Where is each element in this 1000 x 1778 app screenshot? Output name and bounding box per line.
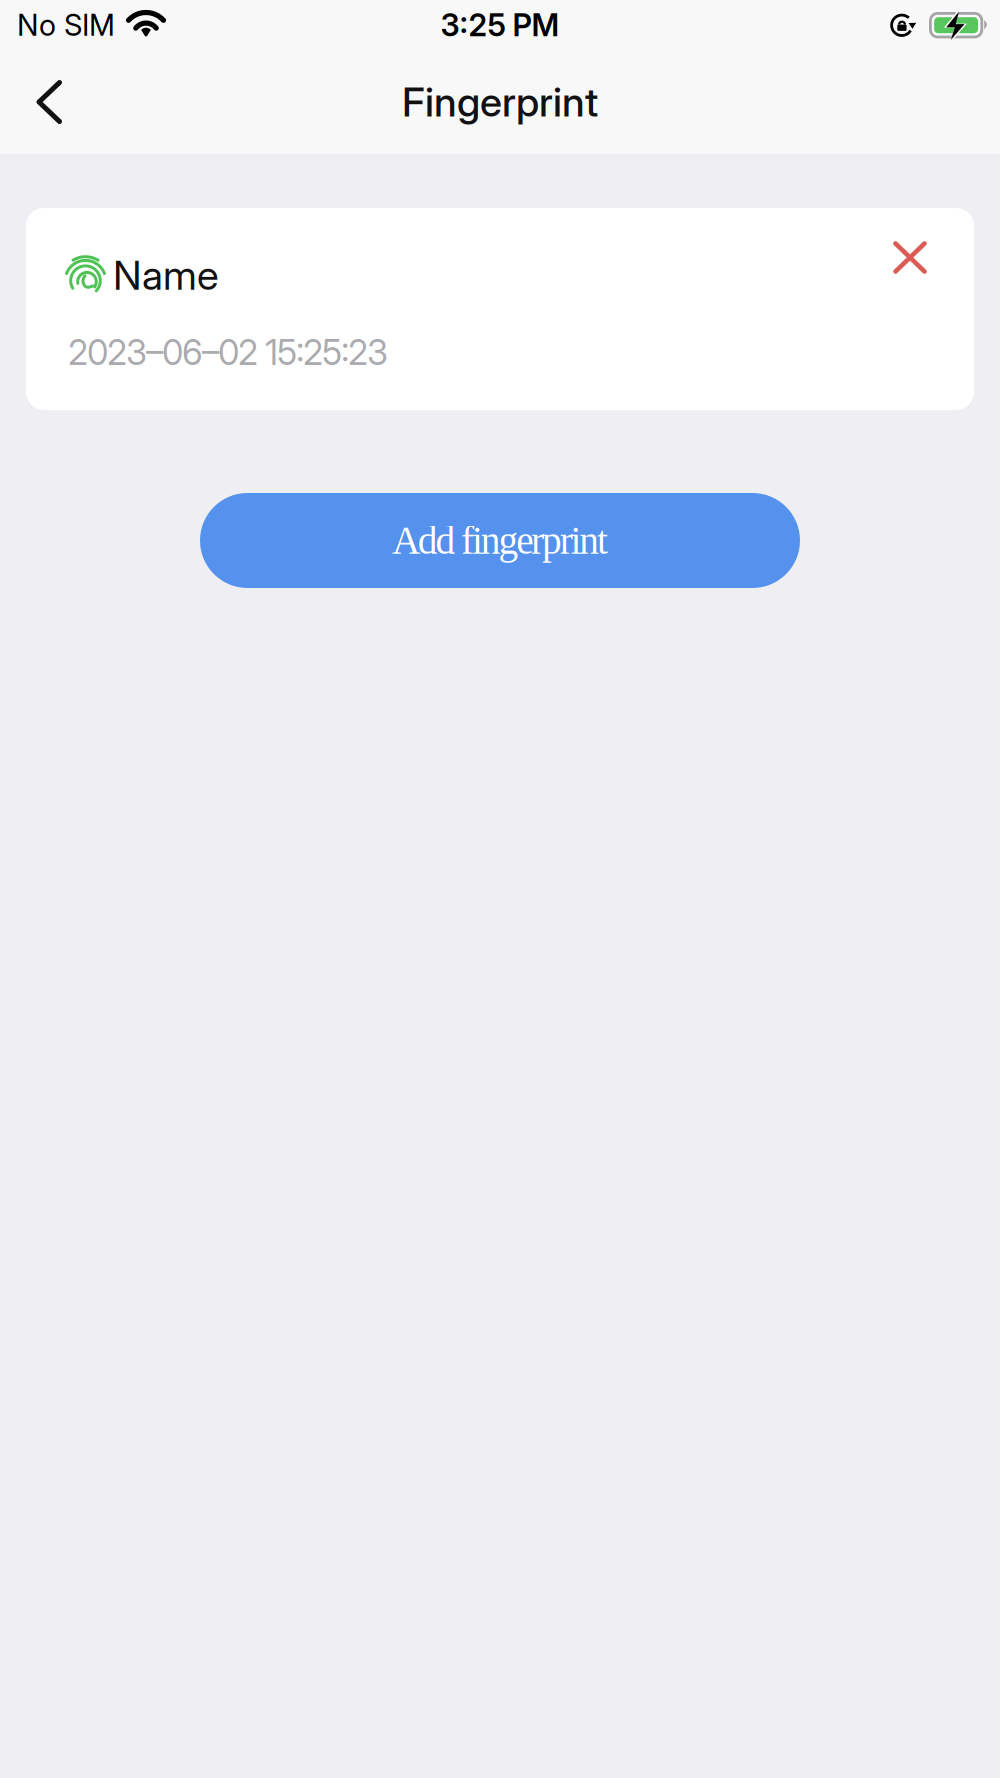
staticText: Name [113, 251, 219, 299]
button[interactable]: Add fingerprint [200, 493, 800, 588]
staticText: 3:25 PM [440, 6, 559, 43]
button[interactable]: Delete fingerprint [893, 208, 974, 274]
staticText: 2023–06–02 15:25:23 [68, 331, 388, 373]
staticText: Add fingerprint [392, 519, 608, 562]
staticText: Fingerprint [402, 78, 598, 126]
staticText: No SIM [17, 7, 115, 43]
button[interactable]: Back [0, 60, 62, 144]
